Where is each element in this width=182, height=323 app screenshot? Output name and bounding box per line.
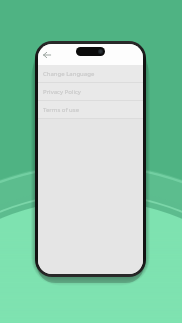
button[interactable]: Back xyxy=(40,48,54,62)
staticText: Terms of use xyxy=(43,106,80,114)
button[interactable]: Terms of use xyxy=(38,101,143,118)
button[interactable]: Privacy Policy xyxy=(38,83,143,100)
button[interactable]: Change Language xyxy=(38,65,143,82)
staticText: Change Language xyxy=(43,70,95,78)
staticText: Privacy Policy xyxy=(43,88,81,96)
